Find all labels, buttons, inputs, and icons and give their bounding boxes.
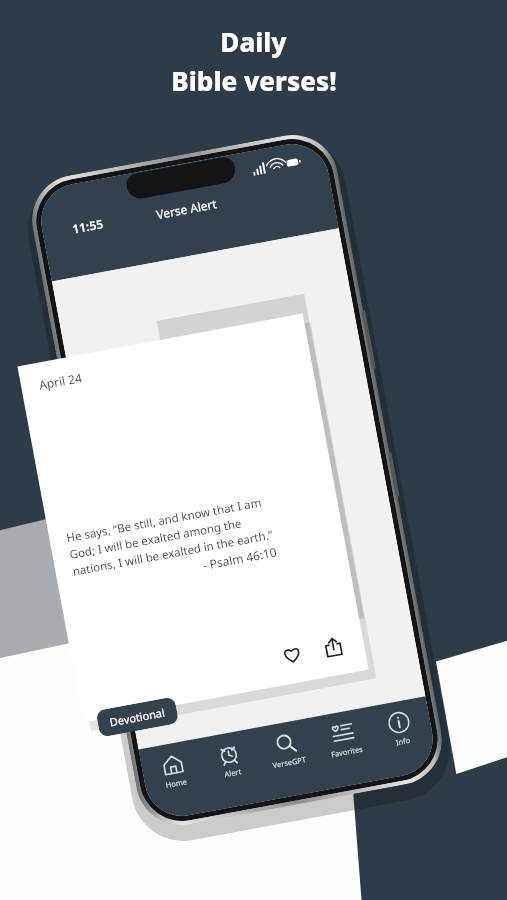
staticText: Devotional (108, 704, 166, 729)
staticText: Alert (223, 766, 242, 779)
staticText: He says, “Be still, and know that I am G… (65, 493, 275, 580)
button[interactable]: Favorites (314, 717, 374, 761)
staticText: Verse Alert (155, 195, 219, 222)
staticText: Bible verses! (171, 63, 337, 98)
button[interactable]: Share (315, 629, 350, 664)
button[interactable]: Alert (200, 738, 260, 783)
staticText: April 24 (38, 369, 84, 393)
staticText: - Psalm 46:10 (201, 543, 278, 573)
button[interactable]: Info (370, 707, 430, 751)
button[interactable]: Favorite (274, 637, 309, 672)
staticText: Favorites (330, 744, 364, 759)
staticText: 11:55 (71, 215, 104, 237)
button[interactable]: Devotional (95, 696, 179, 737)
staticText: Info (395, 735, 411, 747)
staticText: Home (164, 776, 188, 790)
button[interactable]: April 24 (17, 314, 368, 722)
button[interactable]: Home (144, 749, 204, 793)
staticText: Daily (220, 24, 287, 59)
button[interactable]: VerseGPT (257, 728, 317, 772)
staticText: VerseGPT (272, 754, 307, 770)
